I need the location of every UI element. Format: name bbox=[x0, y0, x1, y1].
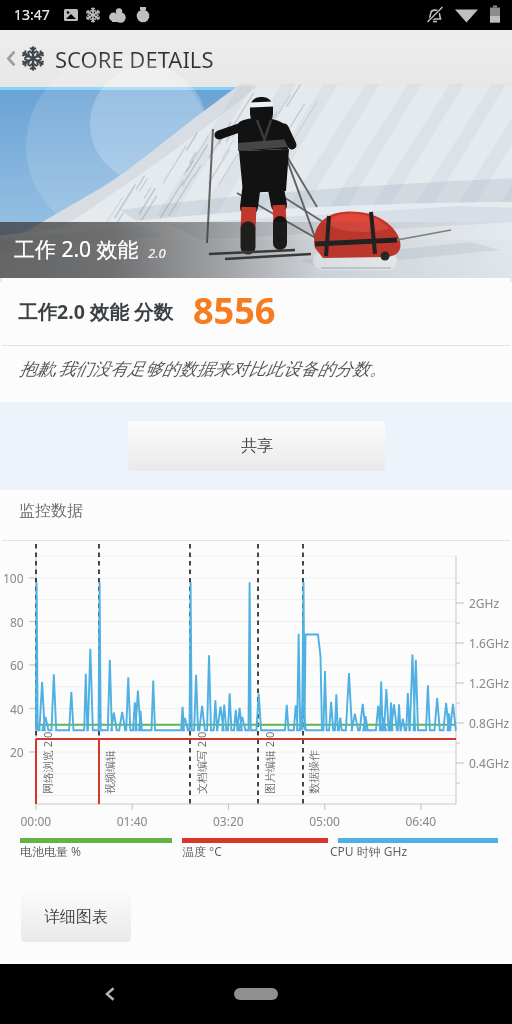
staticText: 8556 bbox=[193, 286, 276, 335]
staticText: 抱歉,我们没有足够的数据来对比此设备的分数。 bbox=[19, 357, 387, 381]
staticText: 工作 2.0 效能 bbox=[14, 235, 139, 264]
staticText: SCORE DETAILS bbox=[55, 44, 214, 74]
staticText: 2.0 bbox=[148, 244, 166, 262]
staticText: 工作2.0 效能 分数 bbox=[18, 298, 173, 325]
staticText: 共享 bbox=[241, 436, 273, 456]
staticText: 13:47 bbox=[14, 5, 50, 24]
staticText: 详细图表 bbox=[44, 907, 108, 927]
button[interactable]: SCORE DETAILS bbox=[0, 30, 512, 87]
staticText: CPU 时钟 GHz bbox=[330, 843, 408, 859]
button[interactable]: 共享 bbox=[128, 421, 385, 471]
button[interactable]: 详细图表 bbox=[21, 891, 131, 942]
staticText: 温度 °C bbox=[182, 843, 222, 859]
button[interactable]: Back bbox=[88, 972, 132, 1016]
staticText: 电池电量 % bbox=[20, 843, 82, 859]
button[interactable]: Home bbox=[234, 988, 278, 1000]
staticText: 监控数据 bbox=[19, 501, 83, 521]
